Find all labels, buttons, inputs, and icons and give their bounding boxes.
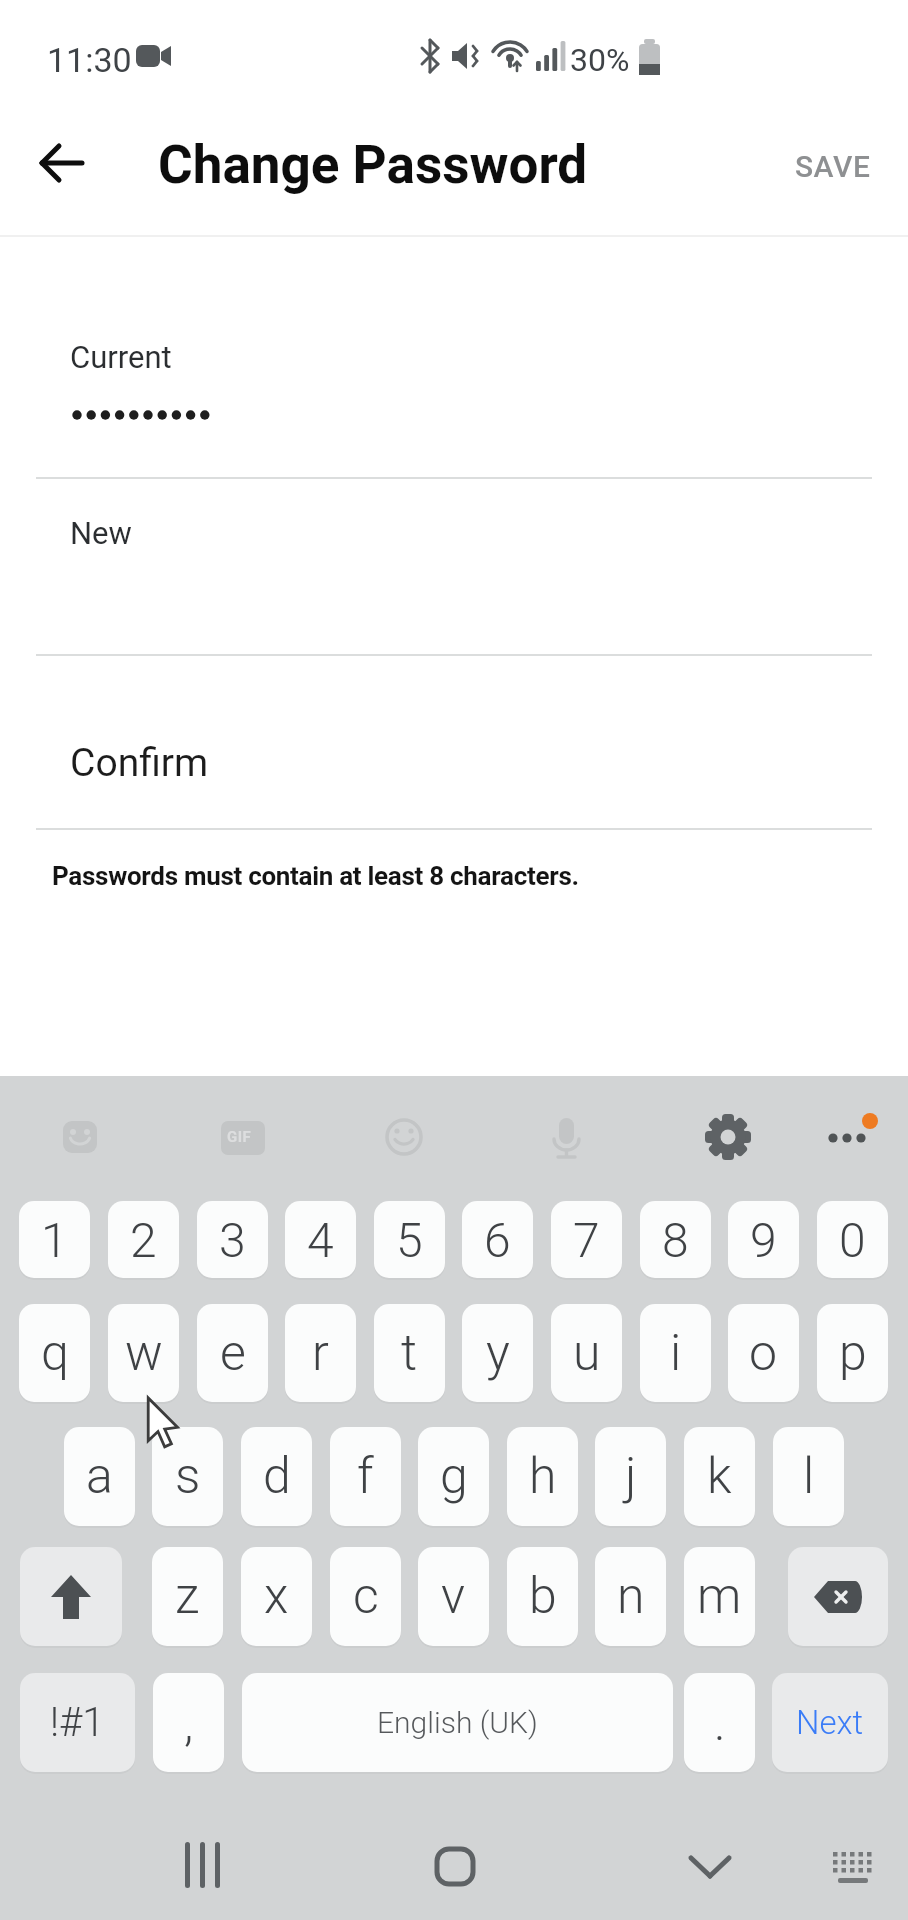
staticText: English (UK): [377, 1705, 538, 1740]
button[interactable]: [688, 1097, 768, 1177]
staticText: .: [714, 1695, 726, 1751]
button[interactable]: 2: [108, 1201, 179, 1278]
button[interactable]: [33, 140, 85, 186]
button[interactable]: m: [684, 1547, 755, 1646]
staticText: Passwords must contain at least 8 charac…: [52, 861, 579, 891]
button[interactable]: [0, 1816, 908, 1920]
staticText: 11:30: [47, 40, 132, 80]
staticText: 0: [839, 1212, 866, 1268]
staticText: f: [357, 1447, 374, 1506]
staticText: !#1: [50, 1699, 105, 1746]
button[interactable]: [20, 1547, 122, 1646]
button[interactable]: .: [684, 1673, 755, 1772]
staticText: z: [175, 1567, 200, 1626]
button[interactable]: a: [64, 1427, 135, 1526]
staticText: g: [440, 1447, 468, 1506]
staticText: x: [264, 1567, 289, 1626]
button[interactable]: j: [595, 1427, 666, 1526]
button[interactable]: [526, 1097, 606, 1177]
button[interactable]: y: [462, 1304, 533, 1402]
button[interactable]: w: [108, 1304, 179, 1402]
button[interactable]: h: [507, 1427, 578, 1526]
button[interactable]: l: [773, 1427, 844, 1526]
button[interactable]: o: [728, 1304, 799, 1402]
staticText: p: [839, 1324, 867, 1383]
staticText: Next: [796, 1703, 864, 1742]
staticText: m: [697, 1567, 742, 1626]
button[interactable]: [203, 1097, 283, 1177]
staticText: c: [353, 1567, 379, 1626]
staticText: s: [175, 1447, 201, 1506]
staticText: q: [41, 1324, 69, 1383]
button[interactable]: e: [197, 1304, 268, 1402]
button[interactable]: English (UK): [242, 1673, 673, 1772]
button[interactable]: [40, 1097, 120, 1177]
button[interactable]: k: [684, 1427, 755, 1526]
button[interactable]: [807, 1097, 887, 1177]
button[interactable]: d: [241, 1427, 312, 1526]
staticText: l: [803, 1447, 815, 1506]
button[interactable]: x: [241, 1547, 312, 1646]
staticText: 6: [484, 1212, 511, 1268]
button[interactable]: 9: [728, 1201, 799, 1278]
button[interactable]: n: [595, 1547, 666, 1646]
button[interactable]: p: [817, 1304, 888, 1402]
staticText: 2: [130, 1212, 157, 1268]
staticText: h: [529, 1447, 557, 1506]
button[interactable]: f: [330, 1427, 401, 1526]
button[interactable]: 7: [551, 1201, 622, 1278]
staticText: k: [707, 1447, 732, 1506]
staticText: t: [401, 1324, 418, 1383]
button[interactable]: u: [551, 1304, 622, 1402]
staticText: 8: [662, 1212, 689, 1268]
staticText: 30%: [570, 41, 630, 79]
button[interactable]: q: [19, 1304, 90, 1402]
staticText: r: [312, 1324, 329, 1383]
staticText: 7: [573, 1212, 600, 1268]
staticText: v: [441, 1567, 466, 1626]
button[interactable]: b: [507, 1547, 578, 1646]
button[interactable]: 3: [197, 1201, 268, 1278]
button[interactable]: c: [330, 1547, 401, 1646]
button[interactable]: !#1: [20, 1673, 135, 1772]
staticText: Confirm: [70, 740, 209, 786]
button[interactable]: t: [374, 1304, 445, 1402]
staticText: 1: [41, 1212, 68, 1268]
staticText: Change Password: [158, 134, 588, 196]
staticText: b: [529, 1567, 557, 1626]
staticText: 5: [396, 1212, 423, 1268]
staticText: i: [670, 1324, 682, 1383]
staticText: j: [625, 1447, 637, 1506]
staticText: d: [263, 1447, 291, 1506]
button[interactable]: 8: [640, 1201, 711, 1278]
button[interactable]: 6: [462, 1201, 533, 1278]
staticText: 4: [307, 1212, 334, 1268]
button[interactable]: g: [418, 1427, 489, 1526]
staticText: SAVE: [795, 149, 871, 184]
button[interactable]: v: [418, 1547, 489, 1646]
staticText: Current: [70, 339, 172, 375]
staticText: e: [220, 1324, 246, 1383]
staticText: u: [573, 1324, 601, 1383]
button[interactable]: 1: [19, 1201, 90, 1278]
staticText: n: [617, 1567, 645, 1626]
button[interactable]: r: [285, 1304, 356, 1402]
button[interactable]: 5: [374, 1201, 445, 1278]
staticText: 9: [750, 1212, 777, 1268]
staticText: GIF: [227, 1128, 252, 1146]
button[interactable]: s: [152, 1427, 223, 1526]
staticText: a: [86, 1447, 113, 1506]
staticText: 3: [219, 1212, 246, 1268]
button[interactable]: ,: [153, 1673, 224, 1772]
button[interactable]: Next: [772, 1673, 888, 1772]
button[interactable]: 4: [285, 1201, 356, 1278]
staticText: ,: [184, 1695, 194, 1751]
button[interactable]: [788, 1547, 888, 1646]
button[interactable]: [364, 1097, 444, 1177]
button[interactable]: i: [640, 1304, 711, 1402]
staticText: w: [125, 1324, 163, 1383]
button[interactable]: 0: [817, 1201, 888, 1278]
staticText: y: [486, 1324, 510, 1383]
button[interactable]: SAVE: [795, 149, 871, 184]
button[interactable]: z: [152, 1547, 223, 1646]
